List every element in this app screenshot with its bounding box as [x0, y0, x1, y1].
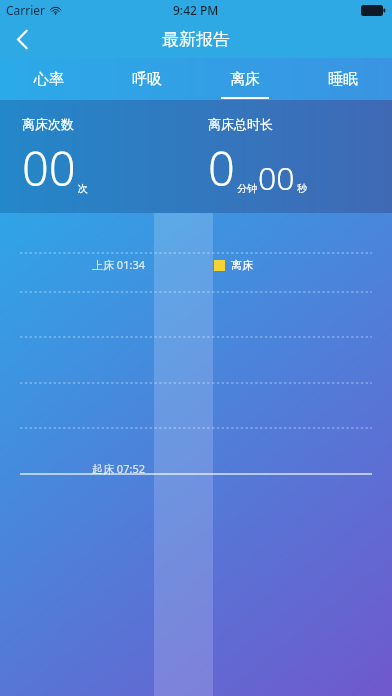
staticText: 00 [258, 156, 295, 200]
staticText: 呼吸 [132, 70, 162, 89]
staticText: 分钟 [237, 182, 257, 195]
staticText: 睡眠 [328, 70, 358, 89]
staticText: 心率 [34, 70, 64, 89]
staticText: Carrier [6, 2, 46, 18]
staticText: 离床总时长 [208, 116, 273, 132]
button[interactable]: 心率 [0, 58, 98, 100]
staticText: 离床次数 [22, 116, 74, 132]
button[interactable]: 离床 [196, 58, 294, 100]
staticText: 00 [22, 136, 76, 200]
staticText: 上床 01:34 [92, 257, 145, 272]
staticText: 9:42 PM [173, 2, 219, 18]
staticText: 离床 [230, 70, 260, 89]
staticText: 最新报告 [162, 29, 230, 50]
staticText: 离床 [231, 258, 253, 272]
staticText: 秒 [297, 182, 307, 195]
staticText: 起床 07:52 [92, 461, 145, 476]
button[interactable]: 睡眠 [294, 58, 392, 100]
button[interactable]: Back [0, 20, 44, 58]
staticText: 0 [208, 136, 235, 200]
button[interactable]: 呼吸 [98, 58, 196, 100]
staticText: 次 [78, 182, 88, 195]
